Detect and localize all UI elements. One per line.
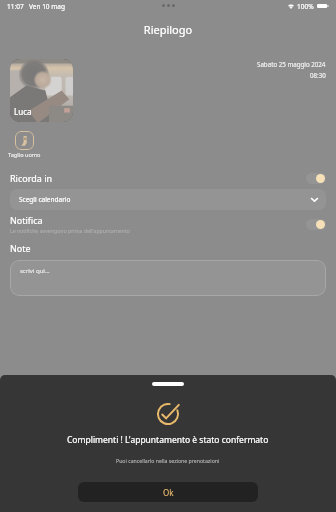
button[interactable]: Luca — [10, 59, 73, 122]
button[interactable]: scrivi qui... — [10, 260, 326, 296]
staticText: 08:30 — [310, 71, 326, 79]
staticText: Ok — [163, 487, 174, 498]
button[interactable]: Taglio uomo — [15, 131, 34, 150]
staticText: Puoi cancellarlo nella sezione prenotazi… — [116, 457, 220, 464]
staticText: Le notifiche avvengono prima dell'appunt… — [10, 227, 130, 234]
button[interactable]: Chiudi — [152, 382, 184, 386]
staticText: Ven 10 mag — [29, 2, 65, 11]
staticText: Note — [10, 242, 31, 254]
staticText: Luca — [14, 106, 32, 117]
staticText: Taglio uomo — [8, 151, 41, 159]
staticText: Sabato 25 maggio 2024 — [257, 60, 326, 68]
button[interactable]: Scegli calendario — [10, 189, 326, 210]
button[interactable]: Attiva — [306, 173, 326, 184]
staticText: Notifica — [10, 214, 43, 226]
button[interactable]: Attiva — [306, 219, 326, 230]
staticText: Riepilogo — [0, 22, 336, 37]
staticText: 100% — [297, 2, 314, 11]
staticText: scrivi qui... — [20, 267, 50, 275]
staticText: Ricorda in — [10, 172, 53, 184]
button[interactable]: Ok — [78, 482, 258, 502]
staticText: Complimenti ! L'appuntamento è stato con… — [67, 434, 269, 446]
staticText: 11:07 — [7, 2, 24, 11]
staticText: Scegli calendario — [19, 195, 71, 204]
